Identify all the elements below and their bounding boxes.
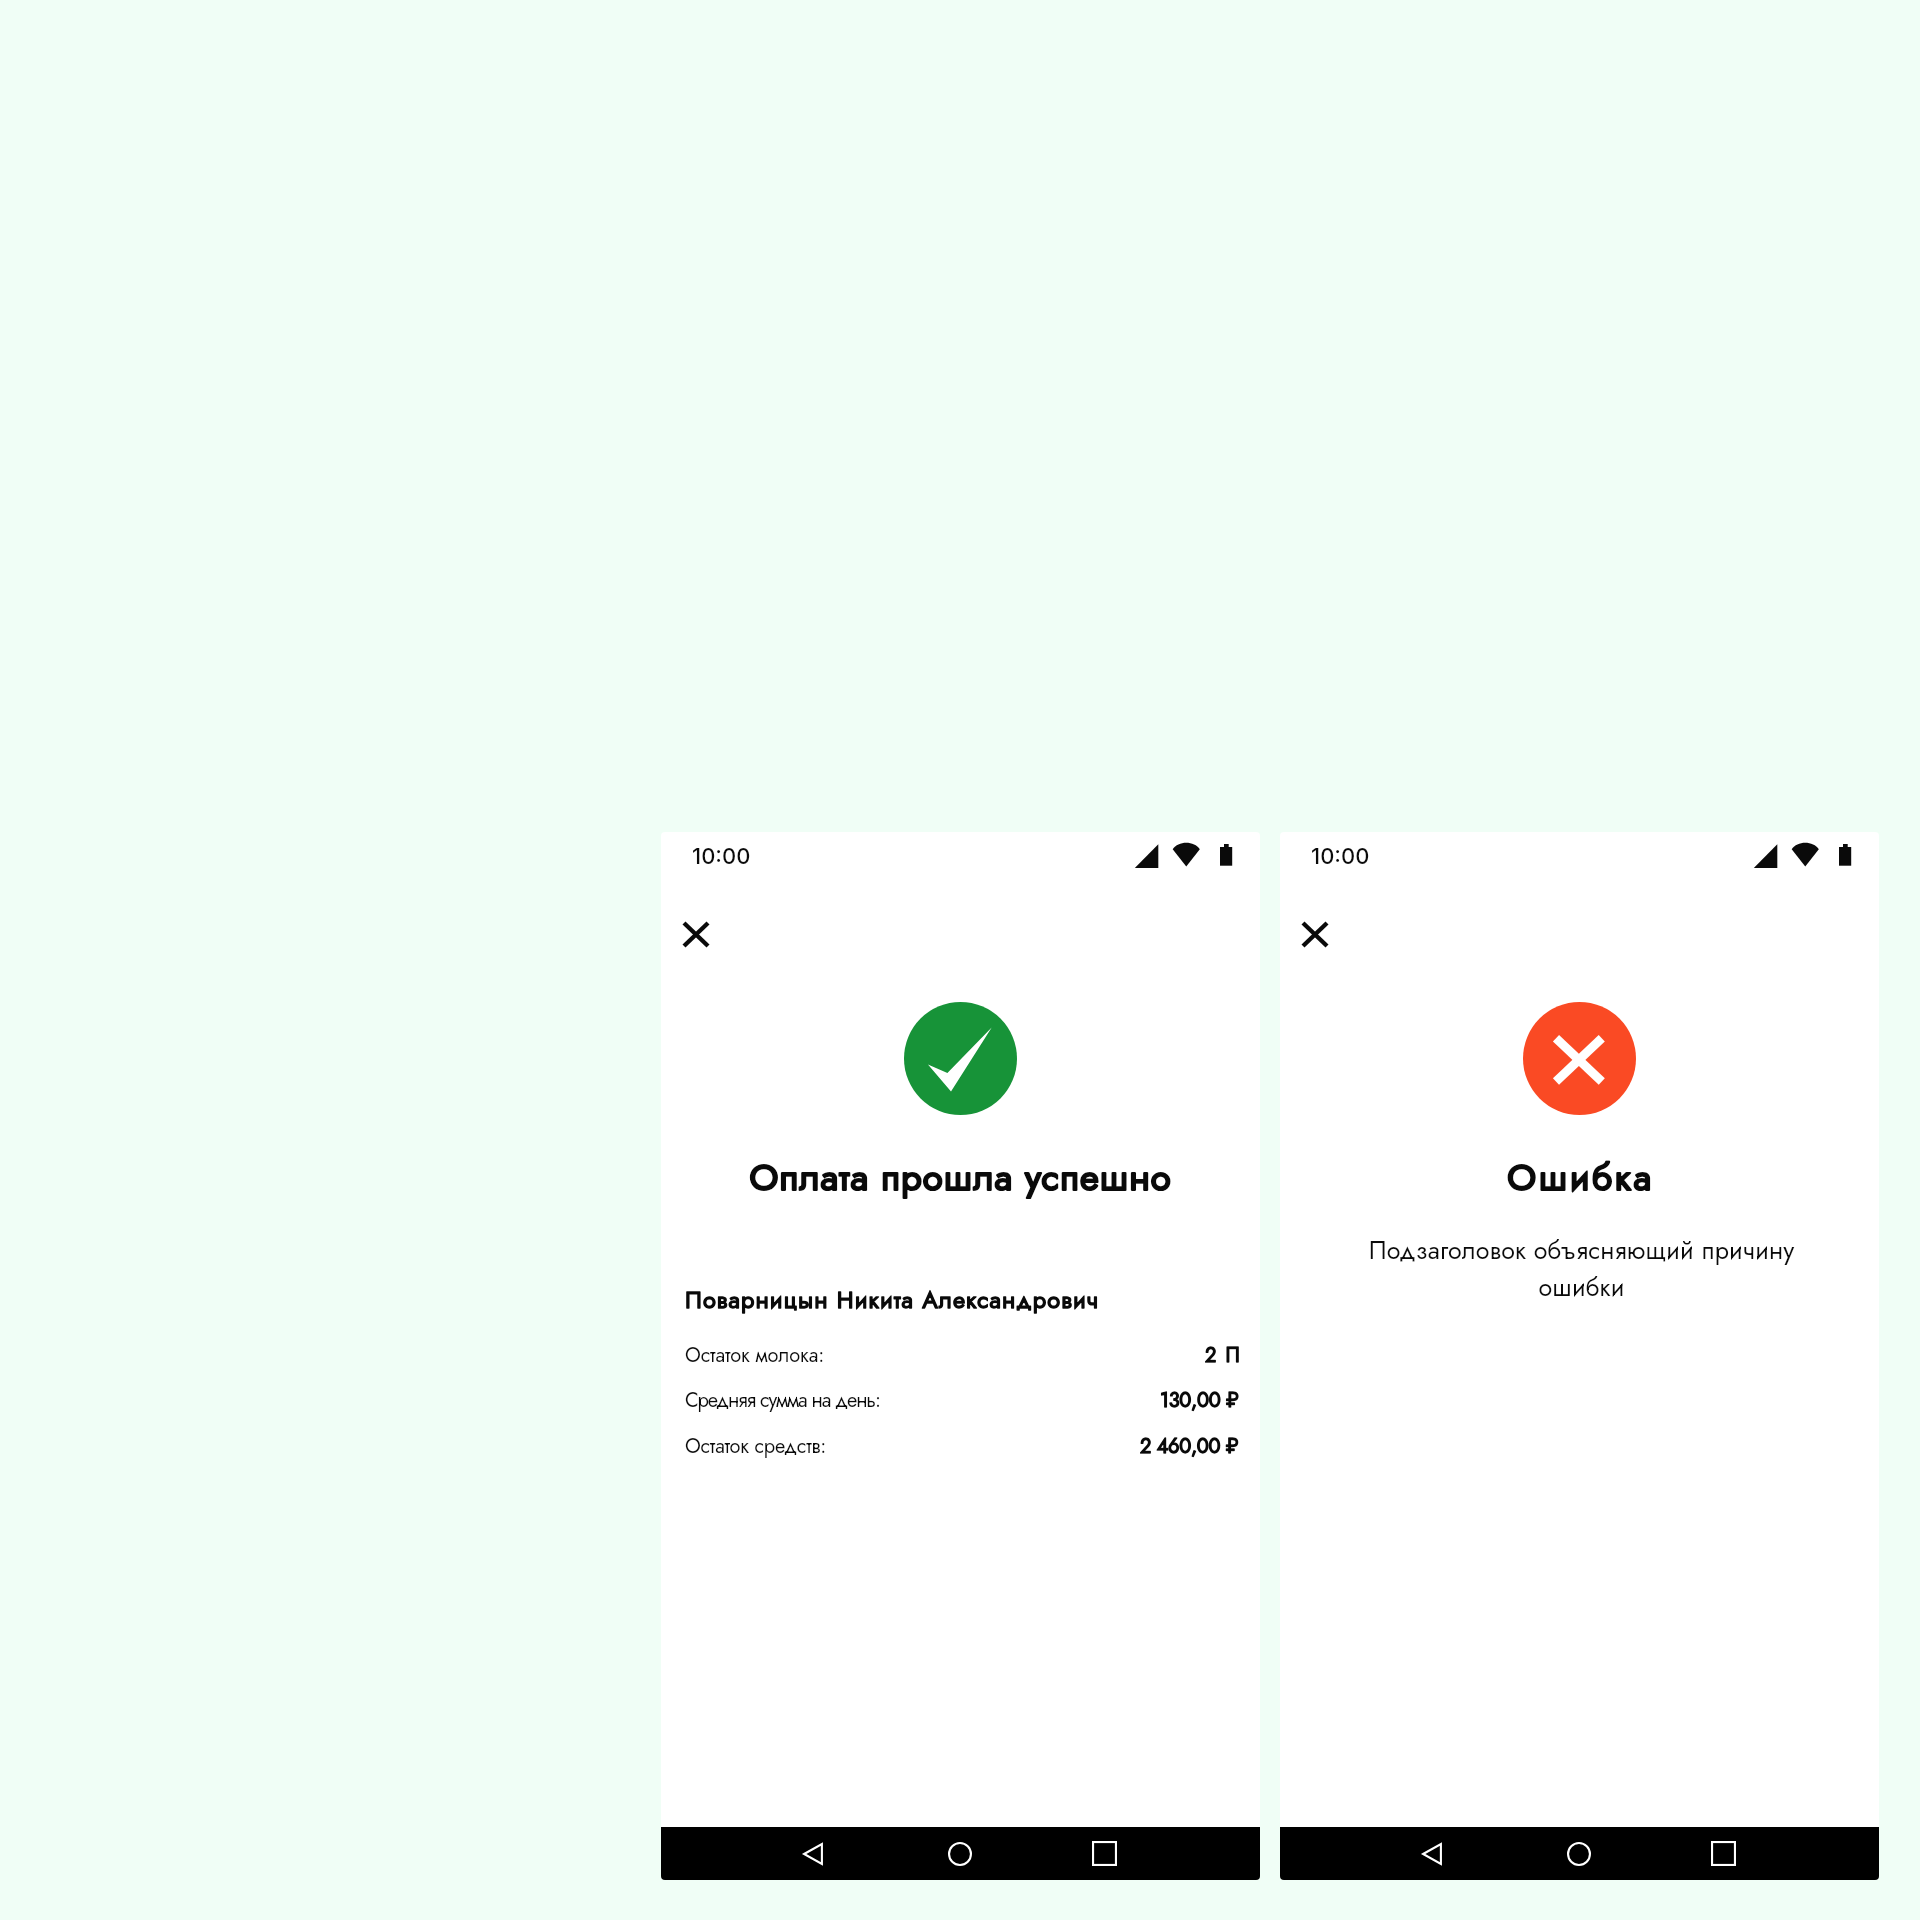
button[interactable]: Back — [771, 1827, 855, 1880]
button[interactable]: Close — [666, 904, 726, 964]
staticText: 130,00 ₽ — [1160, 1386, 1239, 1414]
staticText: 10:00 — [692, 843, 751, 870]
staticText: Остаток молока: — [685, 1341, 825, 1369]
staticText: Оплата прошла успешно — [661, 1151, 1260, 1204]
staticText: 2 П — [1205, 1341, 1242, 1369]
staticText: 2 460,00 ₽ — [1140, 1432, 1239, 1460]
button[interactable]: Остаток средств: — [661, 1432, 1260, 1460]
button[interactable]: Close — [1285, 904, 1345, 964]
staticText: Остаток средств: — [685, 1432, 826, 1460]
staticText: Подзаголовок объясняющий причину ошибки — [1356, 1232, 1807, 1305]
button[interactable]: Back — [1390, 1827, 1474, 1880]
staticText: Оплата прошла успешно — [661, 1151, 1260, 1204]
staticText: 2 П — [1205, 1341, 1242, 1369]
staticText: 130,00 ₽ — [1160, 1386, 1239, 1414]
button[interactable]: Средняя сумма на день: — [661, 1386, 1260, 1414]
button[interactable]: Остаток молока: — [661, 1341, 1260, 1369]
button[interactable]: Home — [918, 1827, 1002, 1880]
staticText: 2 460,00 ₽ — [1140, 1432, 1239, 1460]
staticText: Средняя сумма на день: — [685, 1386, 880, 1414]
button[interactable]: Home — [1537, 1827, 1621, 1880]
staticText: Ошибка — [1281, 1151, 1879, 1204]
staticText: Ошибка — [1281, 1151, 1879, 1204]
staticText: Поварницын Никита Александрович — [685, 1283, 1100, 1317]
staticText: 10:00 — [1311, 843, 1370, 870]
button[interactable]: Recent apps — [1062, 1827, 1146, 1880]
button[interactable]: Recent apps — [1681, 1827, 1765, 1880]
staticText: Поварницын Никита Александрович — [685, 1283, 1100, 1317]
